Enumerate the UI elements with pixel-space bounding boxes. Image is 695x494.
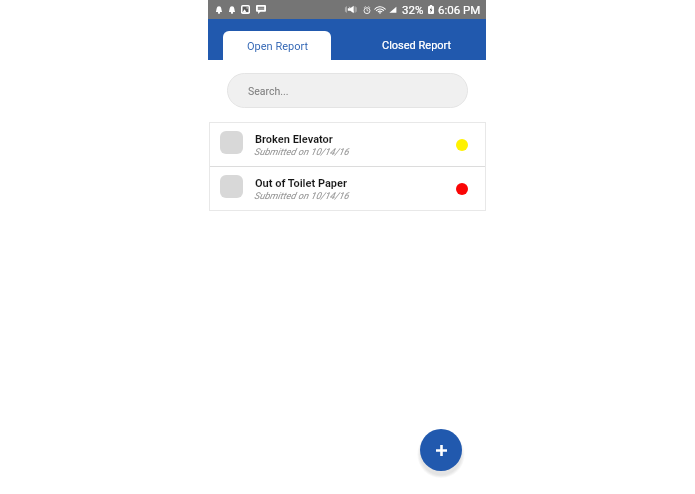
button[interactable]: Add report	[420, 429, 462, 471]
staticText: 6:06 PM	[438, 3, 481, 16]
staticText: Closed Report	[382, 39, 452, 52]
button[interactable]: Closed Report	[332, 19, 486, 60]
button[interactable]: Out of Toilet Paper	[209, 167, 486, 211]
staticText: Submitted on 10/14/16	[254, 146, 349, 157]
button[interactable]: Search...	[227, 73, 468, 108]
staticText: Open Report	[247, 40, 309, 53]
staticText: 32%	[402, 3, 424, 16]
button[interactable]: Broken Elevator	[209, 122, 486, 166]
staticText: Submitted on 10/14/16	[254, 190, 349, 201]
button[interactable]: Open Report	[223, 31, 331, 60]
staticText: Broken Elevator	[255, 133, 333, 146]
staticText: Out of Toilet Paper	[255, 177, 348, 190]
staticText: Search...	[248, 85, 289, 97]
